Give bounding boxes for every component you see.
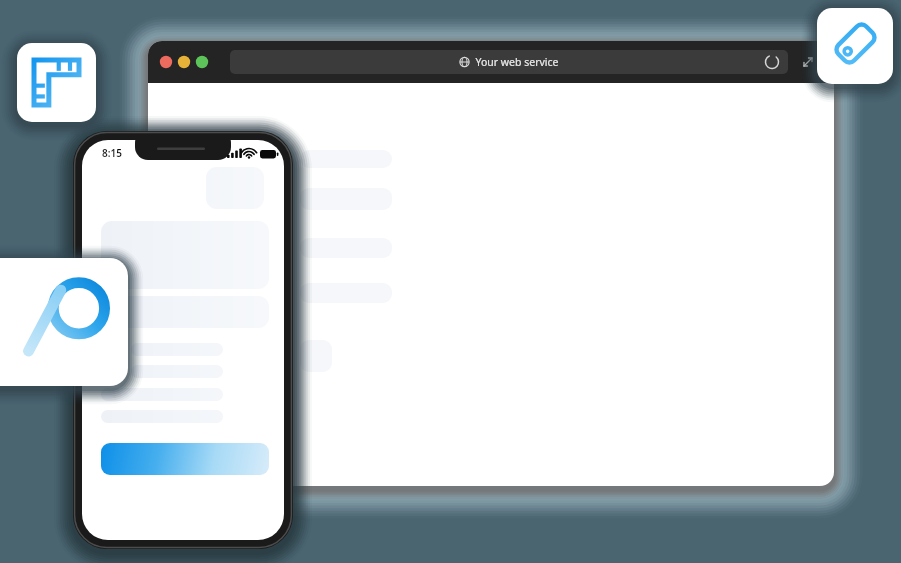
button[interactable]: Multi-device preview illustration	[0, 0, 901, 563]
